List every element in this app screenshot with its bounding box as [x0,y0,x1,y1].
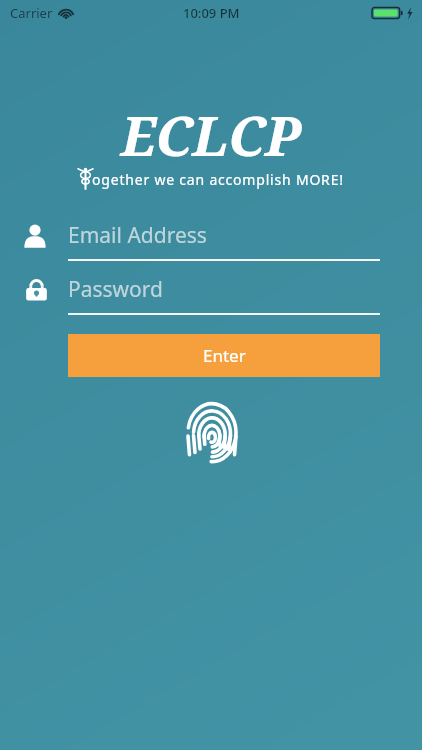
button[interactable]: Email Address [20,221,382,261]
staticText: 10:09 PM [183,4,240,22]
button[interactable]: Password [20,275,382,315]
staticText: Password [68,275,163,304]
staticText: ogether we can accomplish MORE! [92,170,344,189]
staticText: Email Address [68,221,207,250]
staticText: Carrier [10,4,53,22]
staticText: ECLCP [0,97,422,172]
button[interactable]: Enter [68,334,380,377]
button[interactable]: Sign in with fingerprint [181,400,243,470]
staticText: Enter [203,344,246,367]
